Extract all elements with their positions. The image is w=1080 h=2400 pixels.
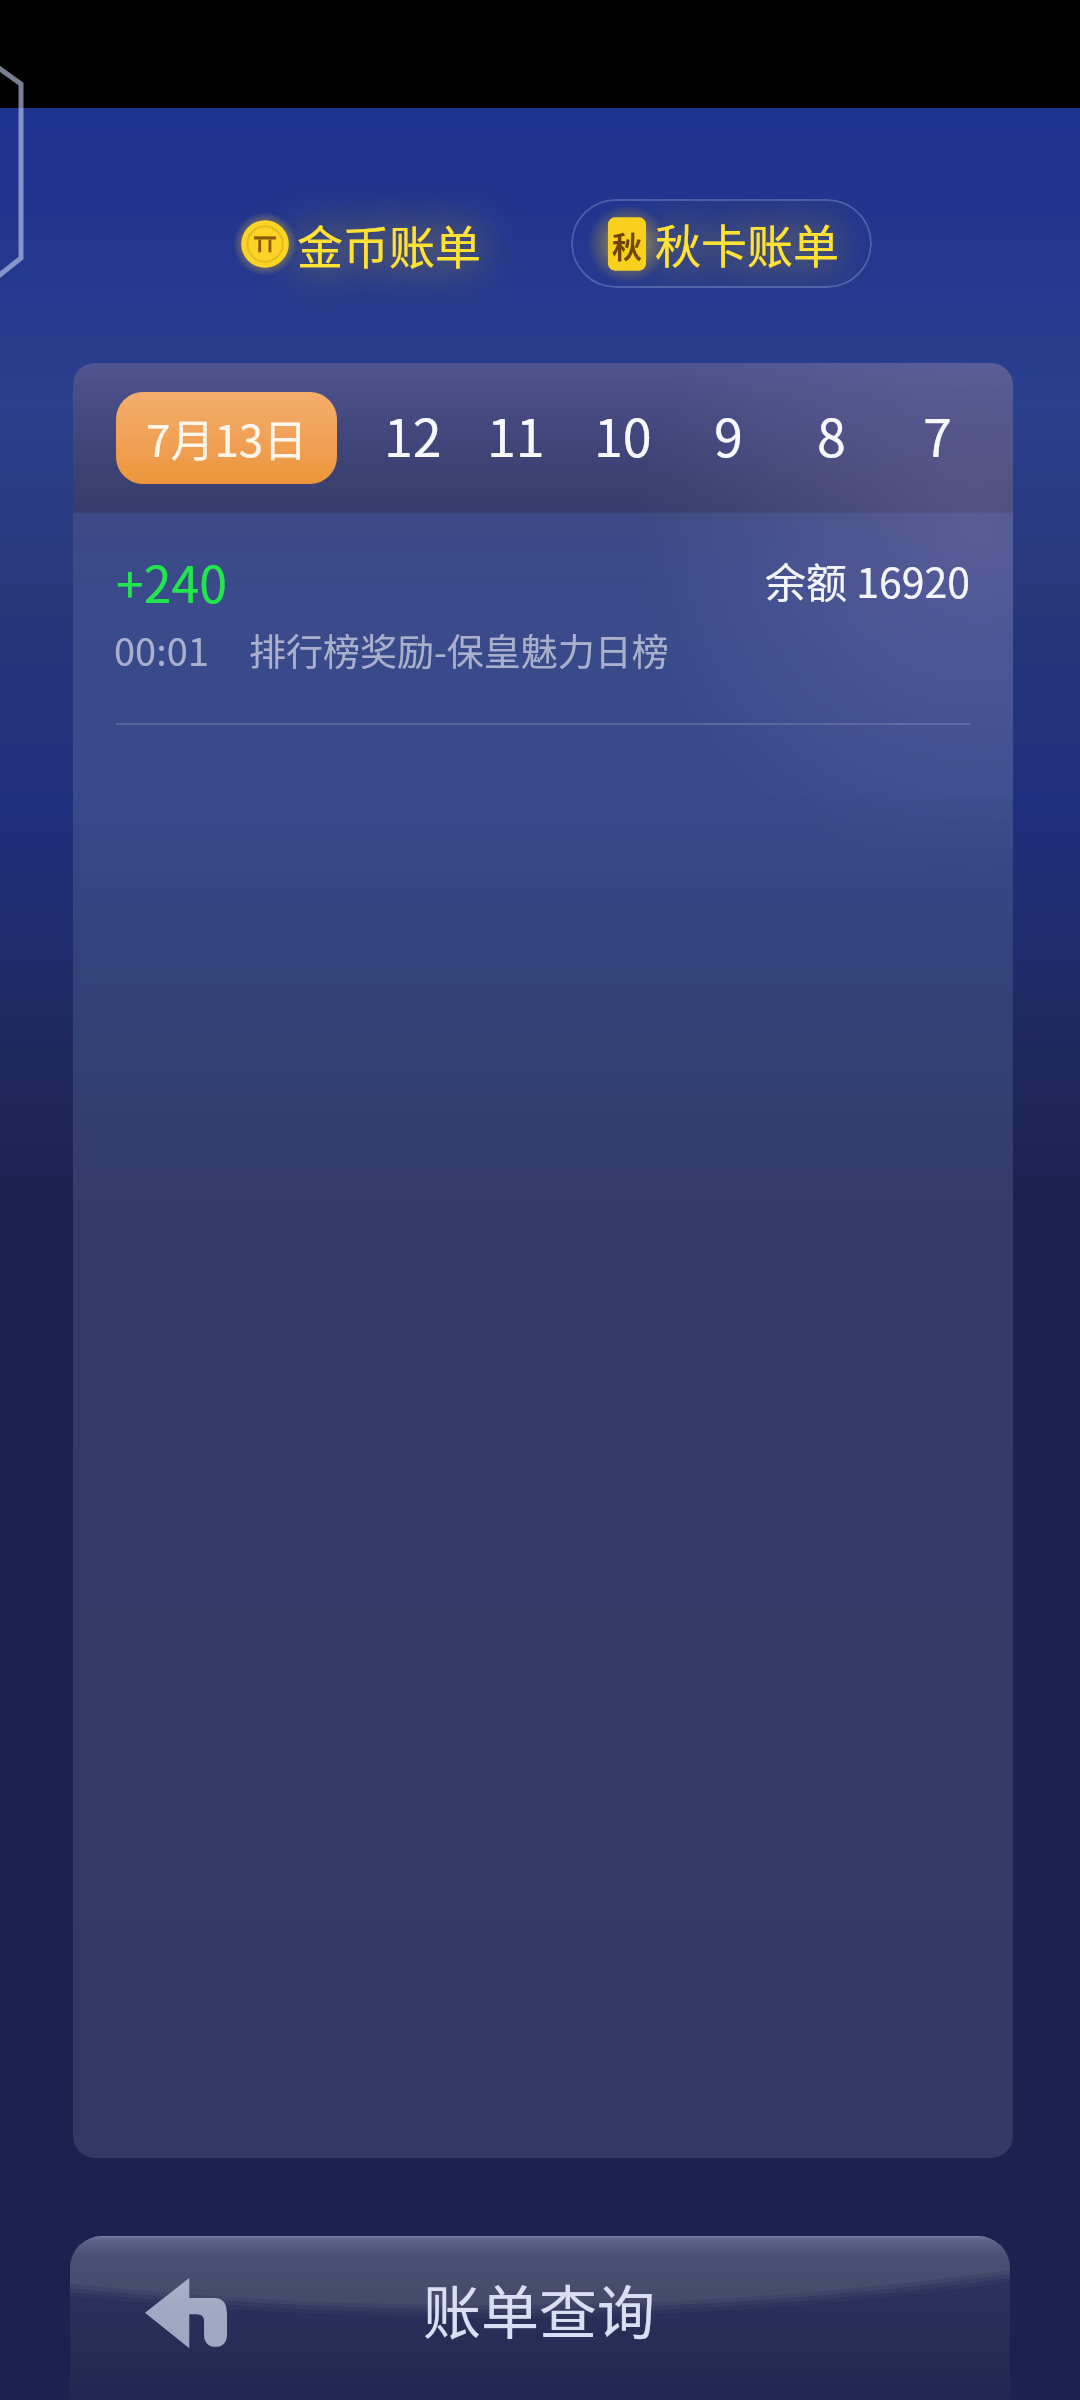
staticText: 11 [487, 397, 545, 472]
button[interactable]: 8 [779, 363, 883, 505]
staticText: 7 [923, 397, 952, 472]
staticText: 秋卡账单 [655, 210, 839, 277]
staticText: +240 [116, 545, 227, 617]
staticText: 10 [594, 397, 652, 472]
staticText: 7月13日 [146, 406, 308, 470]
button[interactable]: 秋 [571, 199, 872, 288]
button[interactable]: 7 [885, 363, 989, 505]
staticText: 余额 16920 [765, 550, 970, 609]
staticText: 00:01 [114, 622, 209, 677]
staticText: 8 [817, 397, 846, 472]
button[interactable]: 12 [361, 363, 465, 505]
button[interactable]: 9 [676, 363, 780, 505]
staticText: 排行榜奖励-保皇魅力日榜 [249, 623, 669, 677]
staticText: 9 [714, 397, 743, 472]
staticText: 账单查询 [423, 2267, 656, 2351]
button[interactable]: 10 [571, 363, 675, 505]
button[interactable]: 金币账单 [229, 198, 485, 290]
button[interactable]: 11 [464, 363, 568, 505]
staticText: 12 [384, 397, 442, 472]
staticText: 秋 [612, 223, 642, 266]
staticText: 金币账单 [297, 211, 481, 278]
button[interactable]: Back [145, 2278, 227, 2349]
button[interactable]: +240 [73, 515, 1013, 727]
button[interactable]: 7月13日 [116, 392, 337, 484]
